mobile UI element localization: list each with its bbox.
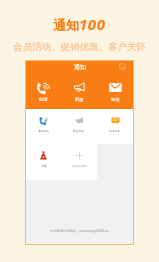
button[interactable]: 电话 — [26, 72, 61, 109]
button[interactable]: 短信历史 — [97, 109, 133, 144]
staticText: 短信历史 — [109, 129, 121, 133]
staticText: 群发 — [75, 97, 84, 102]
staticText: 短信 — [111, 97, 120, 102]
button[interactable]: 通话历史 — [26, 109, 61, 144]
button[interactable]: 充值 — [26, 144, 61, 180]
staticText: 通知 — [53, 17, 79, 33]
staticText: 通话历史 — [38, 129, 50, 133]
button[interactable]: 群发 — [61, 72, 97, 109]
staticText: 群发历史 — [73, 129, 85, 133]
button[interactable]: 群发历史 — [61, 109, 97, 144]
staticText: 充值 — [41, 164, 47, 168]
staticText: 100 — [79, 14, 106, 34]
staticText: 电话 — [39, 97, 48, 102]
button[interactable]: 自定义功能 — [61, 144, 97, 180]
staticText: 网页服务访问地址：www.tongzhi100.cn — [26, 229, 133, 233]
button[interactable]: 短信 — [97, 72, 133, 109]
staticText: 通知 — [74, 63, 86, 71]
button[interactable]: Account — [119, 63, 126, 70]
staticText: 会员活动、促销优惠、客户关怀 — [0, 41, 159, 53]
staticText: 自定义功能 — [72, 164, 86, 168]
